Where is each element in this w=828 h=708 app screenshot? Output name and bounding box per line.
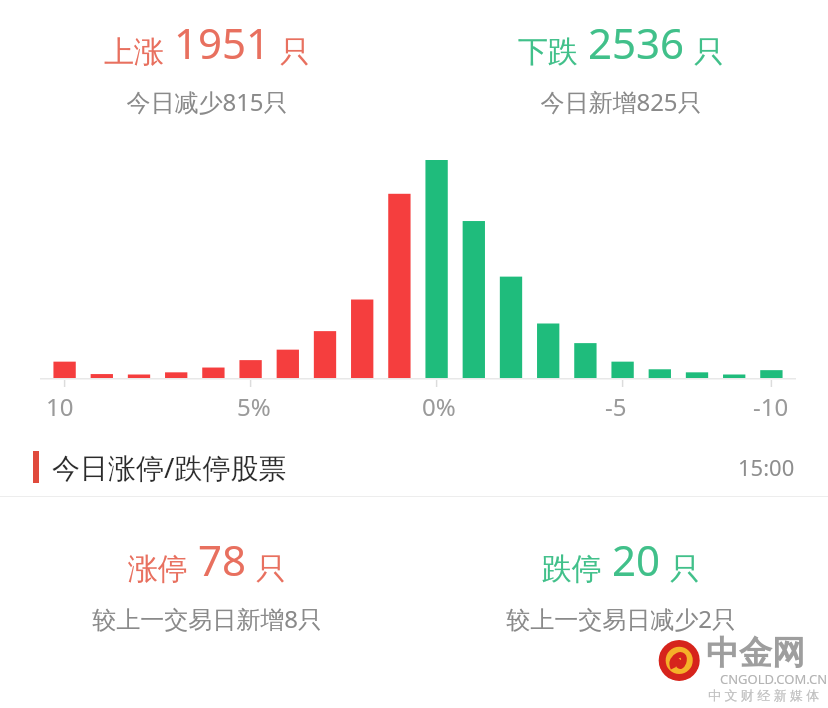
- staticText: 上涨: [104, 33, 164, 71]
- staticText: 1951: [174, 14, 271, 71]
- staticText: 较上一交易日新增8只: [92, 602, 322, 635]
- staticText: 只: [694, 33, 724, 71]
- staticText: 0%: [422, 390, 456, 423]
- staticText: 较上一交易日减少2只: [506, 602, 736, 635]
- staticText: 15:00: [738, 452, 795, 482]
- staticText: 中 文 财 经 新 媒 体: [708, 686, 820, 704]
- staticText: 5%: [237, 390, 271, 423]
- staticText: 2536: [588, 14, 685, 71]
- staticText: 跌停: [542, 550, 602, 588]
- staticText: 下跌: [518, 33, 578, 71]
- button[interactable]: 上涨: [0, 14, 414, 118]
- staticText: 78: [198, 531, 247, 588]
- staticText: 今日涨停/跌停股票: [52, 448, 287, 486]
- staticText: 今日减少815只: [126, 85, 288, 118]
- staticText: 只: [256, 550, 286, 588]
- staticText: 今日新增825只: [540, 85, 702, 118]
- staticText: 只: [280, 33, 310, 71]
- staticText: 20: [612, 531, 661, 588]
- staticText: 涨停: [128, 550, 188, 588]
- button[interactable]: 下跌: [414, 14, 828, 118]
- button[interactable]: 今日涨停/跌停股票: [0, 438, 828, 496]
- button[interactable]: 跌停: [414, 531, 828, 635]
- staticText: -5%: [605, 390, 642, 430]
- staticText: 10%: [46, 390, 84, 430]
- staticText: 中金网: [706, 632, 805, 674]
- staticText: 只: [670, 550, 700, 588]
- staticText: CNGOLD.COM.CN: [720, 670, 828, 688]
- staticText: -10%: [753, 390, 790, 430]
- button[interactable]: 涨停: [0, 531, 414, 635]
